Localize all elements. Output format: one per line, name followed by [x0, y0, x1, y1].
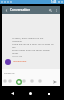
- staticText: Follow up: [4, 72, 15, 75]
- button[interactable]: Attach file: [3, 79, 7, 83]
- button[interactable]: Share location: [38, 79, 42, 83]
- button[interactable]: Search: [47, 7, 53, 13]
- button[interactable]: Send: [51, 78, 58, 85]
- staticText: Hi team, quick update on the: [12, 37, 44, 40]
- button[interactable]: Add image: [30, 79, 34, 83]
- button[interactable]: Navigate up: [3, 7, 9, 13]
- button[interactable]: Take photo: [22, 79, 26, 83]
- staticText: 10:15 AM: [12, 55, 23, 58]
- button[interactable]: Record voice message: [15, 78, 22, 85]
- staticText: roadmap: [12, 40, 22, 43]
- button[interactable]: Back: [9, 90, 16, 97]
- button[interactable]: Recent apps: [45, 90, 52, 97]
- button[interactable]: More options: [53, 7, 59, 13]
- staticText: 1:45: [51, 0, 57, 4]
- button[interactable]: Insert emoji: [8, 79, 12, 83]
- staticText: Could we set up a short call to align on…: [12, 43, 55, 49]
- staticText: action items from the sprint review toda…: [12, 49, 55, 55]
- button[interactable]: Home: [27, 90, 34, 97]
- staticText: Conversation: [10, 8, 31, 12]
- staticText: unsubscribe: [13, 60, 27, 63]
